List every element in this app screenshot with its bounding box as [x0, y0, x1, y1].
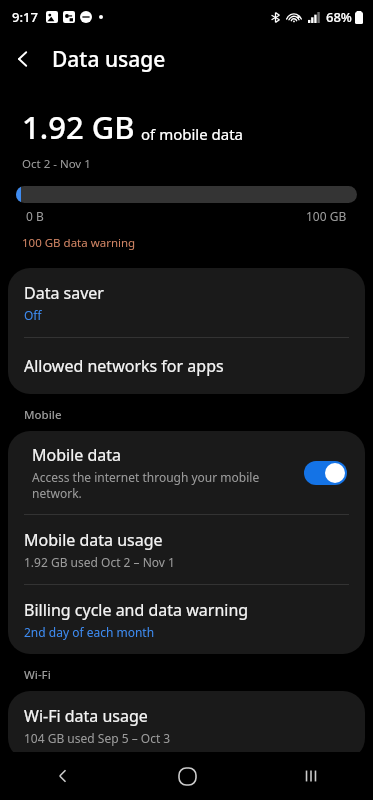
button[interactable]: Mobile data: [8, 431, 365, 514]
button[interactable]: Mobile data usage: [8, 515, 365, 584]
button[interactable]: Back: [0, 36, 46, 82]
staticText: 68%: [326, 8, 352, 26]
button[interactable]: Mobile data toggle: [304, 461, 347, 485]
staticText: Wi-Fi data usage: [24, 705, 148, 727]
button[interactable]: Back: [0, 752, 125, 800]
button[interactable]: Billing cycle and data warning: [8, 585, 365, 654]
staticText: 1.92 GB used Oct 2 – Nov 1: [24, 554, 175, 570]
staticText: 104 GB used Sep 5 – Oct 3: [24, 730, 171, 746]
staticText: 1.92 GB: [22, 106, 135, 148]
staticText: Wi-Fi: [24, 667, 51, 683]
staticText: 9:17: [12, 8, 38, 26]
staticText: Billing cycle and data warning: [24, 599, 249, 621]
staticText: 0 B: [26, 208, 44, 224]
staticText: Mobile: [24, 407, 62, 423]
button[interactable]: Data saver: [8, 268, 365, 337]
staticText: of mobile data: [141, 124, 244, 144]
staticText: Access the internet through your mobile …: [32, 469, 292, 501]
button[interactable]: Wi-Fi data usage: [8, 691, 365, 760]
staticText: 100 GB: [306, 208, 347, 224]
staticText: Data usage: [52, 45, 166, 74]
staticText: Data saver: [24, 282, 104, 304]
staticText: 2nd day of each month: [24, 624, 155, 640]
staticText: Mobile data usage: [24, 529, 163, 551]
staticText: Oct 2 - Nov 1: [22, 156, 91, 172]
button[interactable]: Recents: [249, 752, 373, 800]
staticText: 100 GB data warning: [22, 235, 136, 251]
staticText: Mobile data: [32, 444, 122, 466]
button[interactable]: Home: [125, 752, 249, 800]
staticText: Allowed networks for apps: [24, 355, 224, 377]
button[interactable]: Allowed networks for apps: [8, 338, 365, 394]
staticText: Off: [24, 307, 42, 323]
